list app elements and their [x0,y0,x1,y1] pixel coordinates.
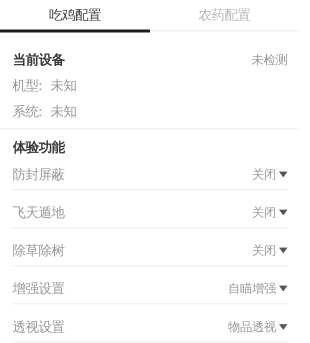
button[interactable]: 除草除树 [0,231,310,269]
staticText: 未检测 [251,52,287,68]
staticText: 防封屏蔽 [12,166,64,183]
staticText: 物品透视 [228,319,276,335]
staticText: 自瞄增强 [228,281,276,296]
button[interactable]: 透视设置 [0,308,310,343]
button[interactable]: 农药配置 [150,0,299,30]
staticText: 机型: 未知 [12,76,76,94]
staticText: 关闭 [252,243,276,258]
staticText: 关闭 [252,167,276,182]
staticText: 体验功能 [12,139,64,156]
button[interactable]: 吃鸡配置 [0,0,150,30]
staticText: 当前设备 [12,51,64,68]
staticText: 除草除树 [12,242,64,259]
staticText: 关闭 [252,205,276,220]
staticText: 透视设置 [12,318,64,335]
button[interactable]: 飞天遁地 [0,193,310,231]
staticText: 增强设置 [12,280,64,297]
staticText: 系统: 未知 [12,102,76,120]
button[interactable]: 增强设置 [0,269,310,307]
button[interactable]: 防封屏蔽 [0,155,310,193]
staticText: 飞天遁地 [12,204,64,221]
staticText: 吃鸡配置 [49,6,101,23]
staticText: 农药配置 [198,6,250,23]
